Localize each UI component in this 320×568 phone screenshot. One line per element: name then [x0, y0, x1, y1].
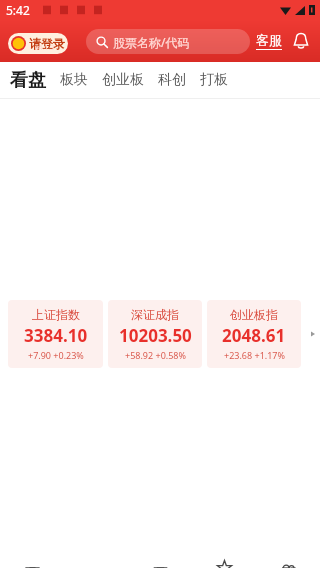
staticText: 10203.50: [119, 324, 192, 347]
button[interactable]: 看盘: [10, 69, 60, 92]
staticText: 上证指数: [32, 307, 80, 322]
button[interactable]: More indices: [306, 106, 320, 561]
button[interactable]: 创业板指: [207, 300, 301, 368]
staticText: 创业板指: [230, 307, 278, 322]
staticText: 打板: [200, 71, 228, 89]
staticText: +23.68 +1.17%: [224, 349, 285, 361]
button[interactable]: 科创: [158, 71, 200, 89]
staticText: 科创: [158, 71, 186, 89]
staticText: 3384.10: [24, 324, 88, 347]
staticText: 深证成指: [131, 307, 179, 322]
staticText: 股票名称/代码: [113, 34, 190, 50]
staticText: 看盘: [10, 69, 46, 92]
button[interactable]: 深证成指: [108, 300, 202, 368]
staticText: 请登录: [29, 36, 65, 51]
button[interactable]: 请登录: [8, 33, 68, 54]
button[interactable]: 板块: [60, 71, 102, 89]
staticText: +7.90 +0.23%: [28, 349, 84, 361]
staticText: 板块: [60, 71, 88, 89]
staticText: v4.1.3: [35, 43, 55, 53]
staticText: 5:42: [6, 2, 30, 18]
button[interactable]: 股票名称/代码: [86, 29, 250, 54]
button[interactable]: 上证指数: [8, 300, 103, 368]
staticText: 2048.61: [222, 324, 286, 347]
staticText: +58.92 +0.58%: [125, 349, 186, 361]
button[interactable]: 客服: [256, 32, 282, 50]
button[interactable]: 打板: [200, 71, 242, 89]
button[interactable]: Notifications: [290, 30, 312, 52]
button[interactable]: 创业板: [102, 71, 158, 89]
staticText: 客服: [256, 32, 282, 48]
staticText: 创业板: [102, 71, 144, 89]
